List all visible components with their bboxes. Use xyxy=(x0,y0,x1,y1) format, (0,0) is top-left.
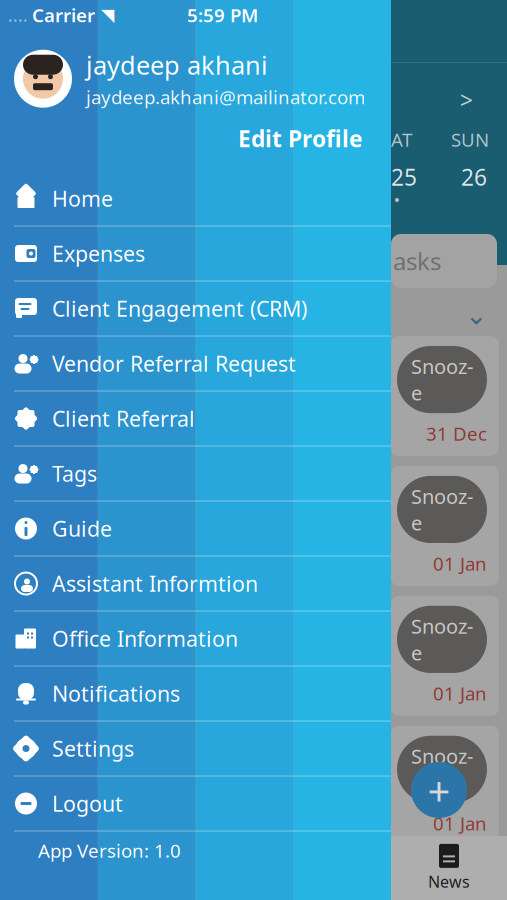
button[interactable]: Settings xyxy=(0,721,391,776)
staticText: Snooze xyxy=(411,353,473,406)
staticText: 26 xyxy=(461,162,487,192)
staticText: + xyxy=(427,763,450,816)
staticText: Client Referral xyxy=(52,404,195,433)
staticText: Notifications xyxy=(52,679,180,708)
button[interactable]: Expenses xyxy=(0,226,391,281)
staticText: .... xyxy=(8,3,28,26)
staticText: > xyxy=(460,85,473,115)
staticText: 25 xyxy=(391,162,417,192)
button[interactable]: Notifications xyxy=(0,666,391,721)
staticText: jaydeep akhani xyxy=(86,48,268,82)
staticText: News xyxy=(428,871,470,892)
staticText: Carrier xyxy=(32,3,95,27)
staticText: Snooze xyxy=(411,743,473,796)
button[interactable]: Tags xyxy=(0,446,391,501)
staticText: Guide xyxy=(52,514,112,543)
staticText: Vendor Referral Request xyxy=(52,349,296,378)
staticText: AT xyxy=(391,127,412,152)
staticText: 5:59 PM xyxy=(187,3,258,27)
staticText: ⌄ xyxy=(465,300,487,330)
staticText: Snooze xyxy=(411,613,473,666)
staticText: Assistant Informtion xyxy=(52,569,258,598)
staticText: Home xyxy=(52,184,113,213)
staticText: 01 Jan xyxy=(433,551,487,576)
staticText: Edit Profile xyxy=(238,123,363,153)
button[interactable]: Client Referral xyxy=(0,391,391,446)
staticText: ◥ xyxy=(101,5,114,25)
button[interactable]: Client Engagement (CRM) xyxy=(0,281,391,336)
staticText: SUN xyxy=(451,127,489,152)
button[interactable]: News xyxy=(391,836,507,900)
staticText: Snooze xyxy=(411,483,473,536)
staticText: asks xyxy=(393,245,441,277)
button[interactable]: Vendor Referral Request xyxy=(0,336,391,391)
staticText: Logout xyxy=(52,789,123,818)
staticText: Office Information xyxy=(52,624,238,653)
staticText: Tags xyxy=(52,459,97,488)
staticText: Client Engagement (CRM) xyxy=(52,294,307,323)
button[interactable]: Logout xyxy=(0,776,391,831)
staticText: 01 Jan xyxy=(433,681,487,706)
button[interactable]: Guide xyxy=(0,501,391,556)
staticText: jaydeep.akhani@mailinator.com xyxy=(86,85,365,109)
button[interactable]: Office Information xyxy=(0,611,391,666)
staticText: 31 Dec xyxy=(426,421,487,446)
button[interactable]: Home xyxy=(0,171,391,226)
staticText: Expenses xyxy=(52,239,145,268)
button[interactable]: Edit Profile xyxy=(238,123,363,153)
staticText: App Version: 1.0 xyxy=(38,838,181,863)
staticText: 01 Jan xyxy=(433,811,487,836)
staticText: Settings xyxy=(52,734,134,763)
button[interactable]: Assistant Informtion xyxy=(0,556,391,611)
